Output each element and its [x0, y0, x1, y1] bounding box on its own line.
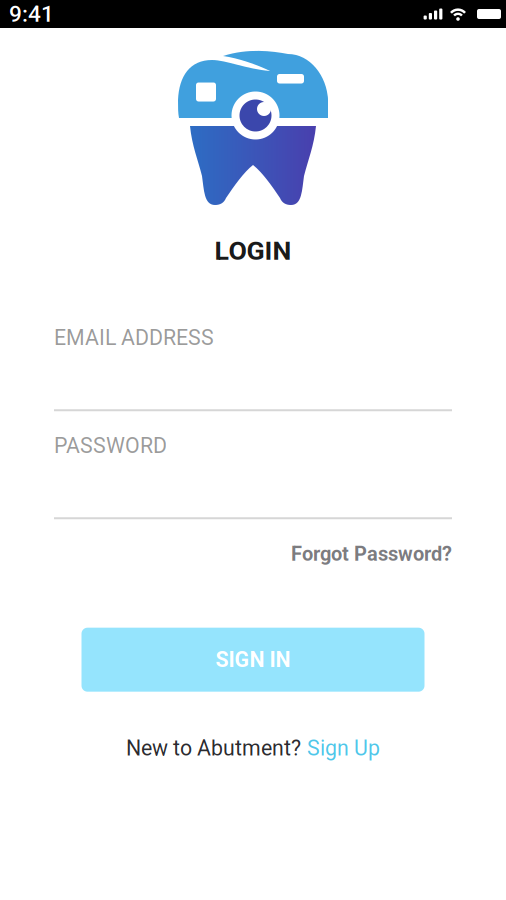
- staticText: LOGIN: [214, 235, 291, 266]
- button[interactable]: SIGN IN: [81, 628, 424, 692]
- staticText: EMAIL ADDRESS: [54, 325, 214, 350]
- button[interactable]: Sign Up: [307, 736, 380, 761]
- staticText: Sign Up: [307, 736, 380, 761]
- staticText: New to Abutment?: [126, 736, 301, 761]
- staticText: PASSWORD: [54, 433, 167, 458]
- staticText: SIGN IN: [215, 647, 290, 672]
- staticText: Forgot Password?: [291, 542, 452, 566]
- button[interactable]: Forgot Password?: [291, 542, 452, 566]
- staticText: 9:41: [9, 1, 54, 27]
